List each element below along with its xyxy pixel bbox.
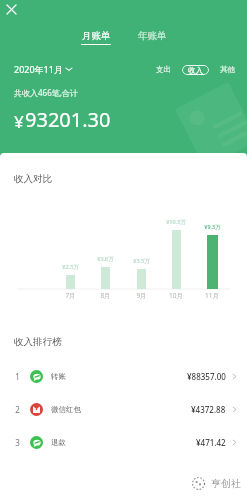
staticText: 收入 bbox=[188, 66, 203, 75]
button[interactable]: 其他 bbox=[218, 63, 237, 76]
button[interactable]: 月账单 bbox=[79, 30, 113, 45]
staticText: 2 bbox=[15, 404, 20, 415]
staticText: 退款 bbox=[51, 438, 66, 447]
button[interactable]: 1 bbox=[0, 360, 247, 393]
staticText: 2020年11月 bbox=[14, 63, 63, 75]
staticText: 亨创社 bbox=[211, 477, 241, 490]
staticText: 93201.30 bbox=[25, 106, 111, 133]
button[interactable]: 年账单 bbox=[135, 30, 169, 45]
staticText: 3 bbox=[15, 437, 20, 448]
staticText: 共收入466笔,合计 bbox=[14, 87, 78, 98]
staticText: ¥3.5万 bbox=[133, 257, 150, 265]
staticText: ¥3.6万 bbox=[97, 255, 114, 263]
staticText: 收入对比 bbox=[14, 173, 52, 185]
button[interactable]: 2020年11月 bbox=[14, 63, 72, 75]
staticText: ¥2.3万 bbox=[62, 263, 79, 271]
staticText: ¥4372.88 bbox=[191, 404, 226, 415]
button[interactable]: 收入 bbox=[182, 65, 209, 75]
staticText: 微信红包 bbox=[51, 405, 81, 414]
button[interactable]: 2 bbox=[0, 393, 247, 426]
staticText: 月账单 bbox=[82, 30, 111, 42]
staticText: ¥10.5万 bbox=[166, 218, 186, 226]
staticText: 年账单 bbox=[138, 30, 167, 42]
staticText: 支出 bbox=[156, 65, 171, 74]
staticText: 8月 bbox=[100, 291, 111, 300]
button[interactable]: Close bbox=[2, 0, 20, 18]
staticText: 11月 bbox=[205, 291, 219, 300]
staticText: 收入排行榜 bbox=[14, 336, 62, 348]
staticText: 10月 bbox=[169, 291, 183, 300]
staticText: 9月 bbox=[136, 291, 147, 300]
staticText: 7月 bbox=[65, 291, 76, 300]
staticText: ¥88357.00 bbox=[187, 371, 226, 382]
staticText: 1 bbox=[15, 371, 20, 382]
staticText: 转账 bbox=[51, 372, 66, 381]
staticText: ¥471.42 bbox=[196, 437, 226, 448]
staticText: ¥ bbox=[14, 110, 24, 133]
button[interactable]: 支出 bbox=[154, 63, 173, 76]
button[interactable]: 3 bbox=[0, 426, 247, 459]
staticText: ¥9.3万 bbox=[204, 223, 221, 231]
staticText: 其他 bbox=[220, 65, 235, 74]
